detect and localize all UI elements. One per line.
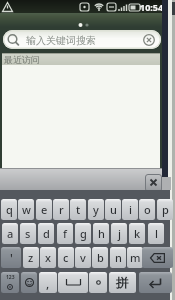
button[interactable] bbox=[58, 272, 88, 293]
staticText: b bbox=[97, 250, 104, 265]
button[interactable]: s bbox=[20, 223, 36, 244]
staticText: x bbox=[45, 250, 51, 265]
staticText: c bbox=[63, 250, 69, 265]
button[interactable]: w bbox=[18, 199, 34, 220]
staticText: m bbox=[130, 250, 141, 265]
button[interactable]: p bbox=[157, 199, 173, 220]
button[interactable]: j bbox=[111, 223, 127, 244]
button[interactable]: l bbox=[148, 223, 164, 244]
staticText: 最近访问 bbox=[4, 54, 40, 65]
staticText: i bbox=[129, 202, 132, 217]
staticText: , bbox=[46, 275, 50, 291]
staticText: d bbox=[43, 226, 50, 241]
button[interactable]: e bbox=[36, 199, 52, 220]
button[interactable]: m bbox=[127, 247, 143, 268]
button[interactable]: 123 bbox=[1, 272, 19, 293]
staticText: y bbox=[93, 202, 99, 217]
staticText: k bbox=[134, 226, 141, 241]
button[interactable] bbox=[145, 174, 162, 192]
staticText: n bbox=[115, 250, 122, 265]
button[interactable]: v bbox=[75, 247, 91, 268]
staticText: ' bbox=[10, 250, 13, 266]
staticText: u bbox=[110, 202, 117, 217]
staticText: o bbox=[144, 202, 151, 217]
button[interactable]: i bbox=[122, 199, 138, 220]
button[interactable] bbox=[21, 272, 37, 293]
button[interactable]: n bbox=[110, 247, 126, 268]
staticText: 123 bbox=[6, 274, 15, 281]
staticText: l bbox=[155, 226, 158, 241]
button[interactable]: x bbox=[40, 247, 56, 268]
button[interactable]: o bbox=[139, 199, 155, 220]
staticText: v bbox=[80, 250, 86, 265]
staticText: q bbox=[6, 202, 13, 217]
button[interactable] bbox=[3, 30, 161, 49]
staticText: 输入关键词搜索 bbox=[26, 34, 96, 47]
staticText: r bbox=[59, 202, 64, 217]
button[interactable]: z bbox=[23, 247, 39, 268]
button[interactable]: r bbox=[53, 199, 69, 220]
button[interactable] bbox=[142, 247, 173, 268]
button[interactable]: c bbox=[58, 247, 74, 268]
button[interactable]: u bbox=[105, 199, 121, 220]
button[interactable]: 拼 bbox=[109, 272, 136, 293]
button[interactable]: b bbox=[92, 247, 108, 268]
staticText: e bbox=[41, 202, 48, 217]
button[interactable]: q bbox=[1, 199, 17, 220]
button[interactable]: h bbox=[93, 223, 109, 244]
staticText: h bbox=[98, 226, 105, 241]
staticText: j bbox=[118, 226, 121, 241]
staticText: 10:54 bbox=[140, 1, 164, 13]
button[interactable]: k bbox=[129, 223, 145, 244]
button[interactable]: d bbox=[38, 223, 54, 244]
button[interactable]: ' bbox=[1, 247, 21, 268]
staticText: p bbox=[162, 202, 169, 217]
staticText: w bbox=[22, 202, 31, 217]
button[interactable]: , bbox=[39, 272, 57, 293]
button[interactable] bbox=[89, 272, 107, 293]
staticText: f bbox=[63, 226, 67, 241]
button[interactable]: t bbox=[70, 199, 86, 220]
staticText: s bbox=[25, 226, 31, 241]
button[interactable]: a bbox=[2, 223, 18, 244]
staticText: 拼 bbox=[116, 275, 129, 291]
button[interactable]: f bbox=[57, 223, 73, 244]
button[interactable]: g bbox=[75, 223, 91, 244]
button[interactable]: y bbox=[88, 199, 104, 220]
staticText: a bbox=[7, 226, 14, 241]
staticText: z bbox=[28, 250, 34, 265]
staticText: g bbox=[80, 226, 87, 241]
staticText: t bbox=[76, 202, 81, 217]
button[interactable] bbox=[139, 272, 172, 293]
